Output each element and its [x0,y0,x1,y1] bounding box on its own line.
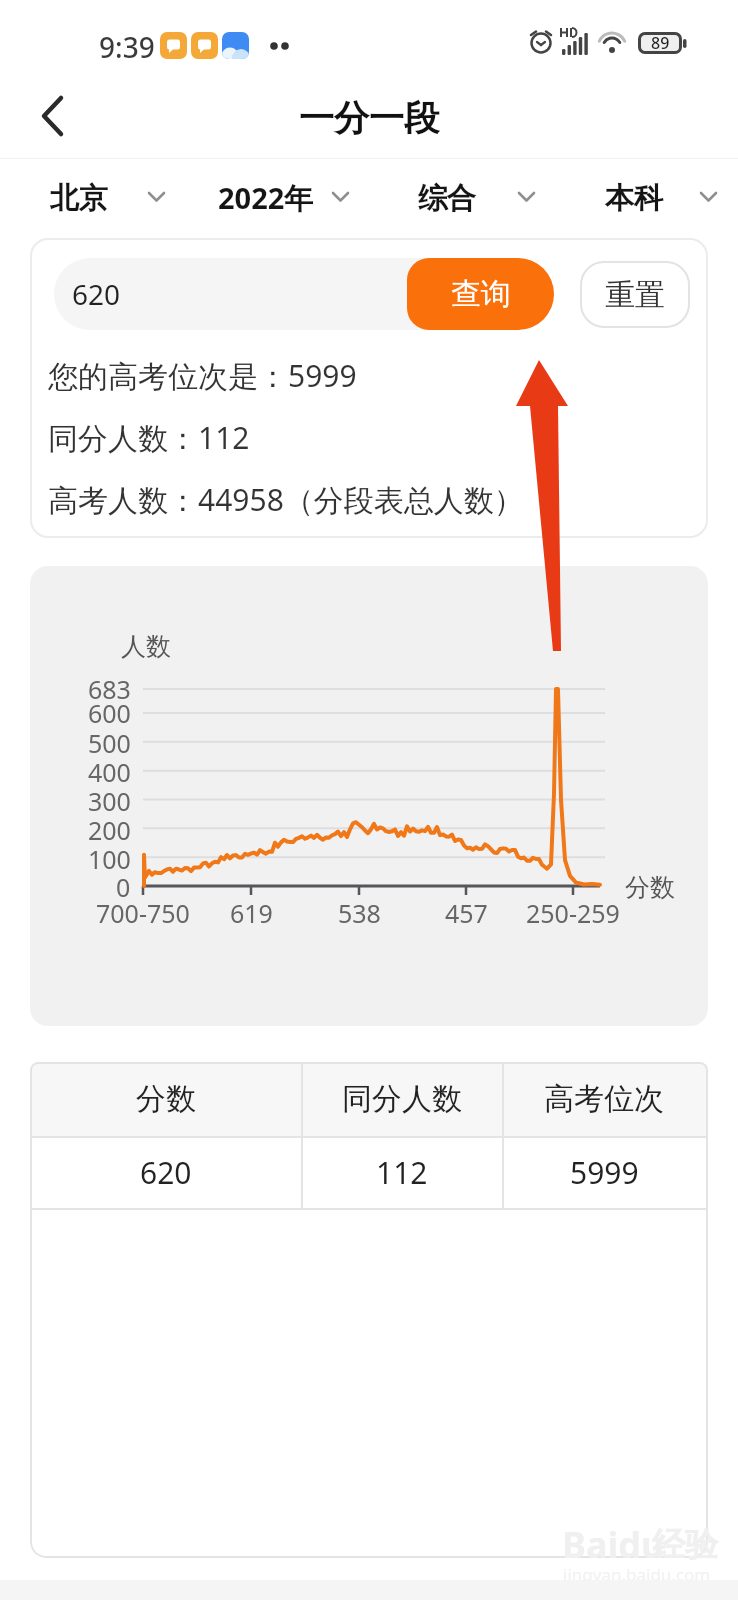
button[interactable]: 查询 [407,258,554,330]
staticText: 500 [88,726,131,758]
staticText: 重置 [605,276,665,314]
staticText: 经验 [652,1524,718,1566]
staticText: 同分人数 [342,1080,462,1118]
staticText: 查询 [451,275,511,313]
staticText: jingyan.baidu.com [563,1563,711,1585]
staticText: 620 [72,275,121,313]
staticText: 600 [88,696,131,728]
staticText: 400 [88,755,131,787]
staticText: 高考人数：44958（分段表总人数） [48,479,524,520]
staticText: 一分一段 [299,96,439,140]
staticText: 人数 [121,631,171,662]
staticText: 5999 [570,1152,639,1193]
button[interactable]: 620 [54,258,554,330]
button[interactable]: 620 [30,1137,301,1207]
staticText: 9:39 [99,28,155,62]
staticText: 同分人数：112 [48,417,250,458]
staticText: 89 [651,32,670,54]
staticText: 683 [88,672,131,704]
staticText: 200 [88,813,131,845]
staticText: 620 [140,1152,192,1193]
staticText: Baidu [562,1520,665,1566]
staticText: 300 [88,784,131,816]
button[interactable] [595,168,726,228]
staticText: 538 [338,896,381,928]
staticText: 分数 [625,872,675,903]
staticText: 2022年 [218,178,314,218]
staticText: 本科 [605,180,663,217]
staticText: 分数 [136,1080,196,1118]
staticText: 112 [376,1152,428,1193]
staticText: 您的高考位次是：5999 [48,355,357,396]
staticText: 100 [88,842,131,874]
staticText: 北京 [50,180,108,217]
staticText: 250-259 [526,896,620,928]
staticText: 高考位次 [544,1080,664,1118]
staticText: 700-750 [96,896,190,928]
staticText: 619 [230,896,273,928]
staticText: 457 [445,896,488,928]
button[interactable]: 分数 [30,1062,301,1136]
button[interactable] [208,168,358,228]
button[interactable]: 重置 [580,261,690,328]
button[interactable] [408,168,544,228]
staticText: 0 [116,870,131,902]
staticText: 综合 [418,180,476,217]
button[interactable] [30,92,78,140]
button[interactable] [40,168,174,228]
